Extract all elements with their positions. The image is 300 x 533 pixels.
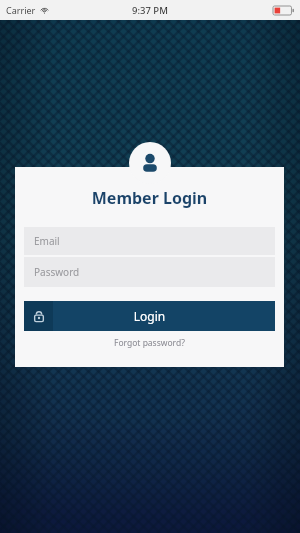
other: Member avatar (129, 142, 171, 184)
staticText: 9:37 PM (132, 4, 168, 17)
staticText: Forgot password? (114, 337, 185, 349)
staticText: Carrier (6, 4, 36, 16)
staticText: Password (34, 265, 80, 279)
button[interactable]: Login (24, 301, 275, 331)
staticText: Login (53, 308, 246, 324)
button[interactable]: Password (24, 257, 275, 287)
staticText: Email (34, 234, 60, 248)
button[interactable]: Email (24, 227, 275, 255)
staticText: Member Login (15, 187, 284, 209)
button[interactable]: Forgot password? (15, 337, 284, 349)
